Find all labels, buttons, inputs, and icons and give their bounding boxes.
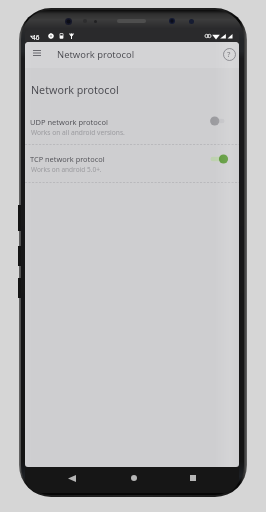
- button[interactable]: Disabled: [205, 116, 230, 126]
- staticText: Network protocol: [57, 48, 135, 61]
- staticText: UDP network protocol: [30, 117, 108, 127]
- button[interactable]: UDP network protocol: [25, 109, 239, 145]
- staticText: Network protocol: [31, 83, 119, 98]
- staticText: TCP network protocol: [30, 154, 105, 164]
- button[interactable]: Back: [61, 467, 83, 489]
- staticText: 46: [32, 33, 40, 42]
- staticText: ?: [227, 49, 231, 60]
- button[interactable]: Open navigation menu: [25, 42, 49, 66]
- button[interactable]: TCP network protocol: [25, 144, 239, 181]
- staticText: Works on all android versions.: [31, 128, 125, 137]
- staticText: Works on android 5.0+.: [31, 165, 102, 174]
- button[interactable]: Enabled: [205, 154, 230, 164]
- button[interactable]: Home: [123, 467, 145, 489]
- button[interactable]: Recent apps: [182, 467, 204, 489]
- button[interactable]: Help: [220, 45, 238, 63]
